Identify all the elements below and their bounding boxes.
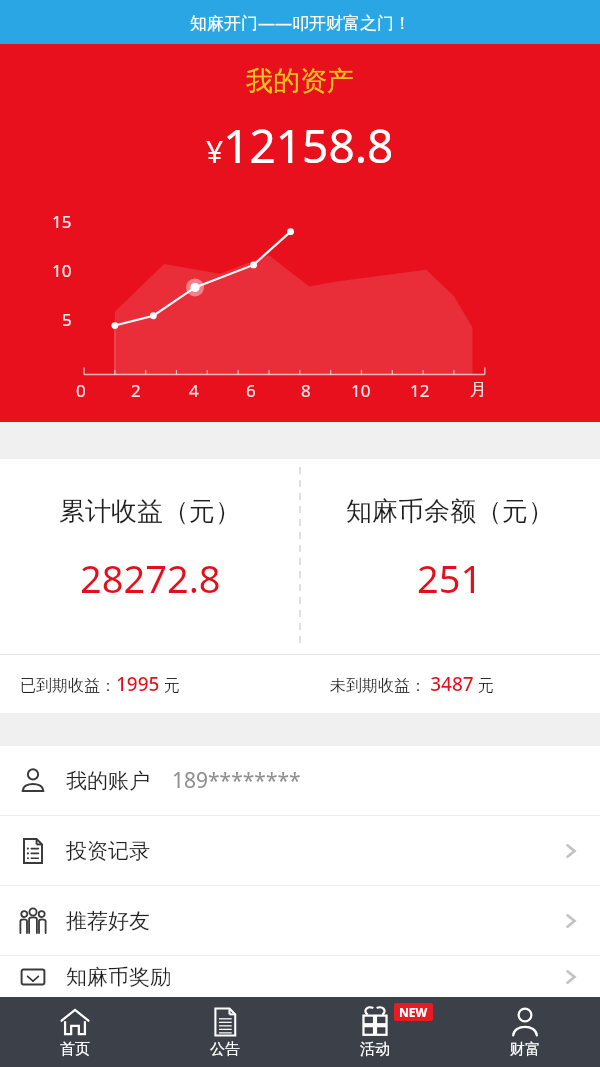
button[interactable]: 我的账户 — [0, 746, 600, 815]
staticText: 10 — [351, 379, 371, 402]
staticText: 活动 — [360, 1040, 390, 1059]
button[interactable]: 知麻币余额（元） — [300, 459, 600, 655]
staticText: 公告 — [210, 1040, 240, 1059]
staticText: 251 — [417, 552, 483, 604]
staticText: 已到期收益：1995 元 — [20, 671, 180, 697]
staticText: 我的资产 — [246, 64, 354, 98]
button[interactable]: 首页 — [0, 997, 150, 1067]
staticText: 6 — [246, 379, 256, 402]
staticText: 189******** — [172, 766, 301, 795]
staticText: 知麻币余额（元） — [346, 495, 554, 528]
button[interactable]: 财富 — [450, 997, 600, 1067]
other: 公告 — [209, 1006, 241, 1038]
staticText: ¥12158.8 — [206, 114, 394, 177]
staticText: NEW — [399, 1004, 428, 1020]
staticText: 知麻开门——叩开财富之门！ — [190, 11, 411, 34]
button[interactable]: 投资记录 — [0, 816, 600, 885]
button[interactable]: 累计收益（元） — [0, 459, 300, 655]
staticText: 10 — [52, 259, 72, 282]
other: 活动 — [359, 1006, 391, 1038]
other: 财富 — [509, 1006, 541, 1038]
staticText: 28272.8 — [80, 552, 221, 604]
staticText: 12 — [410, 379, 430, 402]
staticText: 月 — [470, 379, 487, 400]
staticText: 财富 — [510, 1040, 540, 1059]
staticText: 未到期收益： 3487 元 — [330, 671, 494, 697]
button[interactable]: 活动 — [300, 997, 450, 1067]
staticText: 5 — [62, 308, 72, 331]
button[interactable]: 公告 — [150, 997, 300, 1067]
staticText: 15 — [52, 210, 72, 233]
staticText: 首页 — [60, 1040, 90, 1059]
staticText: 8 — [301, 379, 311, 402]
other: 首页 — [59, 1006, 91, 1038]
staticText: 知麻币奖励 — [66, 964, 171, 990]
button[interactable]: 知麻币奖励 — [0, 956, 600, 997]
button[interactable]: 推荐好友 — [0, 886, 600, 955]
staticText: 推荐好友 — [66, 908, 150, 934]
staticText: 累计收益（元） — [59, 495, 241, 528]
staticText: 0 — [76, 379, 86, 402]
staticText: 2 — [131, 379, 141, 402]
staticText: 我的账户 — [66, 768, 150, 794]
staticText: 投资记录 — [66, 838, 150, 864]
staticText: 4 — [189, 379, 199, 402]
